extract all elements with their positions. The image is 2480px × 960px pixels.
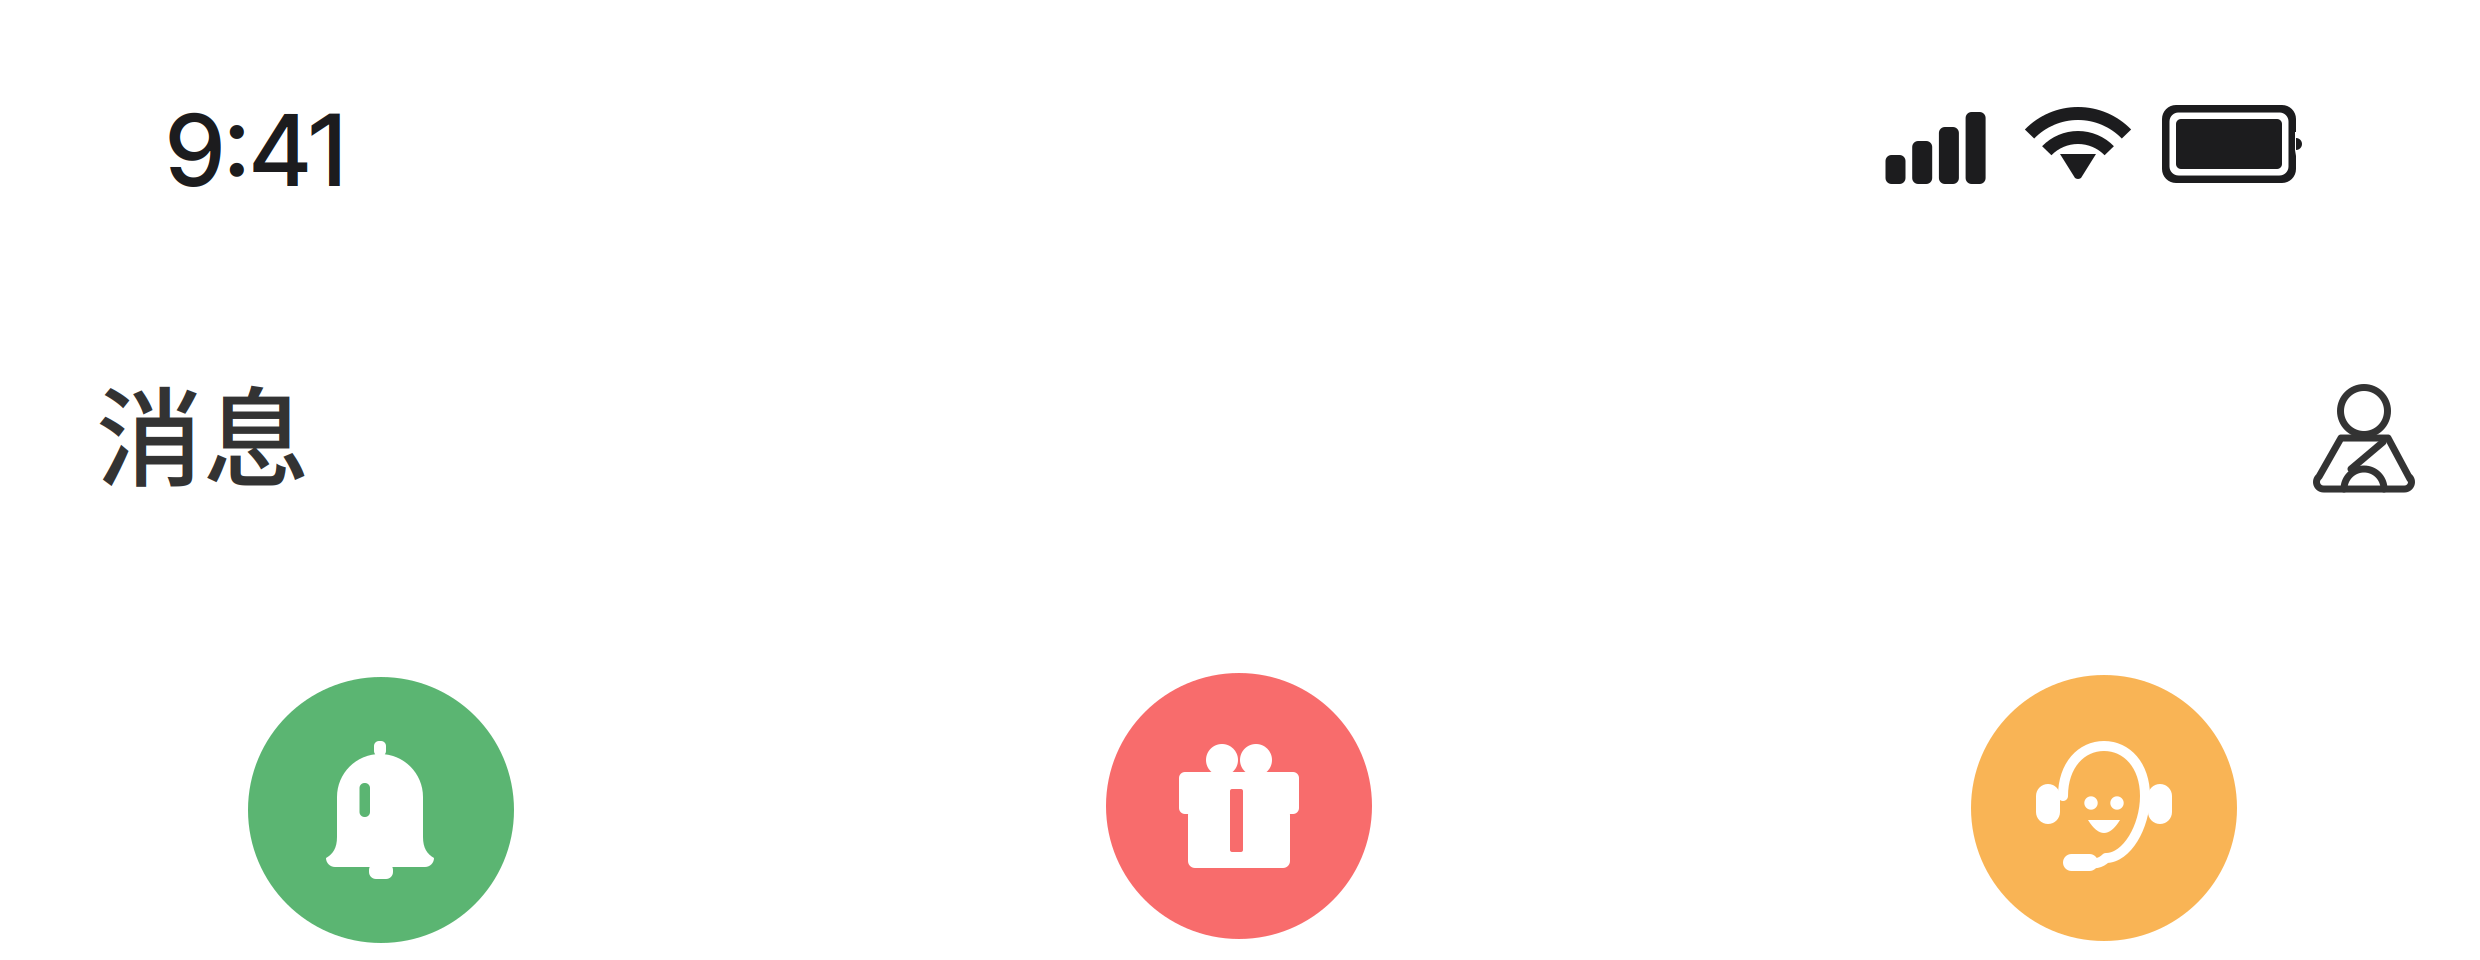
- button[interactable]: 在线客服: [1971, 675, 2237, 941]
- button[interactable]: 通知消息: [248, 677, 514, 943]
- button[interactable]: Contacts: [2312, 384, 2416, 492]
- staticText: 9:41: [166, 90, 346, 210]
- button[interactable]: 优惠活动: [1106, 673, 1372, 939]
- staticText: 消息: [96, 354, 310, 508]
